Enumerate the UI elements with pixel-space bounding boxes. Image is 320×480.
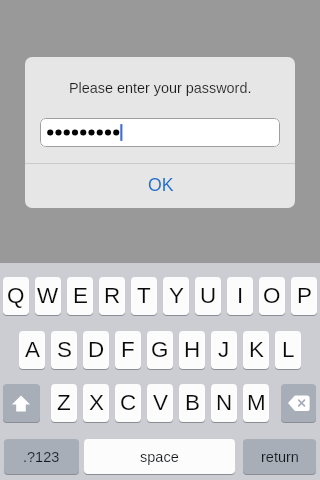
button[interactable]: X — [83, 384, 109, 422]
button[interactable]: .?123 — [4, 439, 79, 474]
staticText: Y — [169, 283, 184, 308]
button[interactable]: Password field — [40, 118, 280, 147]
button[interactable]: W — [35, 277, 61, 315]
button[interactable]: V — [147, 384, 173, 422]
button[interactable]: Backspace — [281, 384, 316, 422]
button[interactable]: M — [243, 384, 269, 422]
staticText: space — [140, 449, 179, 465]
button[interactable]: T — [131, 277, 157, 315]
button[interactable]: P — [291, 277, 317, 315]
button[interactable]: OK — [26, 162, 295, 208]
staticText: J — [218, 337, 230, 362]
button[interactable]: D — [83, 331, 109, 369]
button[interactable]: G — [147, 331, 173, 369]
button[interactable]: Y — [163, 277, 189, 315]
button[interactable]: K — [243, 331, 269, 369]
staticText: return — [261, 449, 299, 465]
button[interactable]: U — [195, 277, 221, 315]
staticText: W — [37, 283, 59, 308]
staticText: F — [121, 337, 135, 362]
button[interactable]: space — [84, 439, 235, 474]
button[interactable]: C — [115, 384, 141, 422]
button[interactable]: A — [19, 331, 45, 369]
staticText: Please enter your password. — [69, 80, 252, 96]
staticText: N — [216, 390, 233, 415]
staticText: Z — [57, 390, 71, 415]
staticText: G — [151, 337, 169, 362]
staticText: M — [247, 390, 266, 415]
staticText: V — [153, 390, 168, 415]
button[interactable]: F — [115, 331, 141, 369]
staticText: K — [249, 337, 264, 362]
staticText: S — [57, 337, 72, 362]
staticText: E — [73, 283, 88, 308]
button[interactable]: R — [99, 277, 125, 315]
staticText: I — [237, 283, 244, 308]
staticText: R — [104, 283, 121, 308]
staticText: A — [25, 337, 40, 362]
button[interactable]: H — [179, 331, 205, 369]
staticText: C — [120, 390, 137, 415]
button[interactable]: O — [259, 277, 285, 315]
button[interactable]: N — [211, 384, 237, 422]
button[interactable]: I — [227, 277, 253, 315]
staticText: Q — [7, 283, 25, 308]
button[interactable]: Q — [3, 277, 29, 315]
staticText: U — [200, 283, 217, 308]
button[interactable]: B — [179, 384, 205, 422]
button[interactable]: Z — [51, 384, 77, 422]
staticText: B — [185, 390, 200, 415]
staticText: X — [89, 390, 104, 415]
button[interactable]: return — [243, 439, 316, 474]
staticText: O — [263, 283, 281, 308]
button[interactable]: E — [67, 277, 93, 315]
staticText: D — [88, 337, 105, 362]
staticText: H — [184, 337, 201, 362]
button[interactable]: Shift — [3, 384, 40, 422]
staticText: .?123 — [23, 449, 60, 465]
staticText: P — [297, 283, 312, 308]
staticText: T — [137, 283, 151, 308]
staticText: L — [282, 337, 295, 362]
staticText: OK — [148, 175, 174, 195]
button[interactable]: J — [211, 331, 237, 369]
button[interactable]: L — [275, 331, 301, 369]
button[interactable]: S — [51, 331, 77, 369]
